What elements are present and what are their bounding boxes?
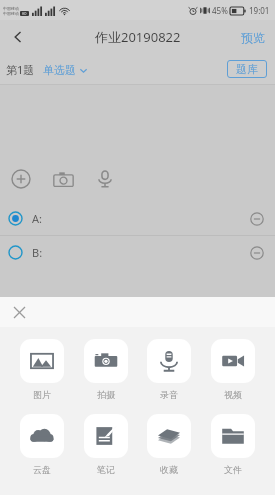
staticText: 45%	[212, 5, 228, 16]
staticText: 19:01	[249, 5, 270, 16]
staticText: HD	[22, 12, 27, 16]
button[interactable]: 收藏	[141, 414, 197, 475]
button[interactable]: 笔记	[78, 414, 134, 475]
staticText: B:	[32, 245, 43, 260]
button[interactable]: 视频	[205, 339, 261, 400]
button[interactable]: 拍摄	[78, 339, 134, 400]
staticText: A:	[32, 211, 42, 226]
button[interactable]: A:	[0, 202, 275, 235]
staticText: 中国移动	[3, 11, 19, 16]
staticText: 文件	[224, 464, 242, 475]
staticText: 收藏	[160, 464, 178, 475]
staticText: 中国移动	[3, 6, 19, 11]
button[interactable]: B:	[0, 236, 275, 269]
button[interactable]: 录音	[141, 339, 197, 400]
staticText: 第1题	[6, 62, 35, 77]
button[interactable]: 单选题	[43, 63, 88, 77]
button[interactable]: 云盘	[14, 414, 70, 475]
button[interactable]: Camera	[48, 164, 78, 194]
staticText: 图片	[33, 389, 51, 400]
staticText: 拍摄	[97, 389, 115, 400]
button[interactable]: 图片	[14, 339, 70, 400]
staticText: 云盘	[33, 464, 51, 475]
button[interactable]: 文件	[205, 414, 261, 475]
button[interactable]: 预览	[231, 20, 275, 54]
button[interactable]: Remove option	[247, 209, 267, 229]
button[interactable]: Back	[0, 20, 36, 54]
staticText: 单选题	[43, 63, 76, 77]
button[interactable]: Remove option	[247, 243, 267, 263]
staticText: 录音	[160, 389, 178, 400]
staticText: 笔记	[97, 464, 115, 475]
staticText: 作业20190822	[95, 28, 181, 46]
staticText: 视频	[224, 389, 242, 400]
staticText: 预览	[241, 30, 265, 45]
button[interactable]: 题库	[227, 60, 267, 78]
button[interactable]: Record audio	[90, 164, 120, 194]
button[interactable]: Close	[8, 301, 30, 323]
staticText: 题库	[236, 62, 258, 76]
button[interactable]: Add	[6, 164, 36, 194]
